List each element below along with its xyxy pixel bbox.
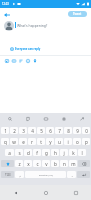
button[interactable]: w (10, 138, 18, 145)
button[interactable]: , (15, 171, 24, 178)
button[interactable]: Add location (31, 57, 38, 64)
staticText: y (49, 139, 52, 145)
button[interactable]: 1 (1, 127, 9, 134)
staticText: c (36, 161, 39, 167)
staticText: 2 (13, 128, 16, 134)
staticText: 0 (85, 128, 88, 134)
button[interactable]: Shift (1, 160, 14, 167)
staticText: What's happening? (17, 23, 48, 28)
button[interactable]: i (64, 138, 72, 145)
button[interactable]: z (15, 160, 23, 167)
button[interactable]: x (24, 160, 32, 167)
button[interactable]: n (60, 160, 68, 167)
button[interactable]: 6 (46, 127, 54, 134)
button[interactable]: ?123 (1, 171, 14, 178)
staticText: h (54, 150, 57, 156)
button[interactable]: 5 (37, 127, 45, 134)
button[interactable]: Add GIF (10, 57, 17, 64)
button[interactable]: Profile picture (4, 21, 14, 31)
button[interactable]: r (28, 138, 36, 145)
button[interactable]: y (46, 138, 54, 145)
button[interactable]: k (69, 149, 77, 156)
button[interactable]: o (73, 138, 81, 145)
staticText: , (19, 172, 21, 178)
staticText: 3 (22, 128, 25, 134)
button[interactable]: 8 (64, 127, 72, 134)
staticText: 12:23 (2, 2, 9, 6)
button[interactable]: u (55, 138, 63, 145)
staticText: s (18, 150, 21, 156)
staticText: Español (US) (39, 173, 53, 176)
button[interactable]: Back (2, 10, 12, 20)
button[interactable]: Tweet (68, 11, 87, 17)
staticText: k (72, 150, 75, 156)
staticText: 4 (31, 128, 34, 134)
staticText: p (85, 139, 88, 145)
staticText: g (45, 150, 48, 156)
button[interactable]: e (19, 138, 27, 145)
button[interactable]: Recent apps (61, 185, 91, 200)
staticText: d (27, 150, 30, 156)
button[interactable]: More options (73, 113, 91, 125)
button[interactable]: q (1, 138, 9, 145)
staticText: x (27, 161, 30, 167)
button[interactable]: m (69, 160, 77, 167)
button[interactable]: h (51, 149, 59, 156)
staticText: 9 (76, 128, 79, 134)
button[interactable]: Settings (55, 113, 73, 125)
button[interactable]: j (60, 149, 68, 156)
staticText: e (22, 139, 25, 145)
button[interactable]: Backspace (78, 160, 90, 167)
staticText: n (63, 161, 66, 167)
button[interactable]: Everyone can reply (10, 47, 41, 51)
staticText: z (18, 161, 21, 167)
staticText: t (40, 139, 42, 145)
button[interactable]: Search (0, 113, 19, 125)
staticText: o (76, 139, 79, 145)
button[interactable]: p (82, 138, 90, 145)
staticText: . (71, 172, 73, 178)
button[interactable]: Español (US) (25, 171, 66, 178)
button[interactable]: Back (0, 185, 31, 200)
button[interactable]: 0 (82, 127, 90, 134)
staticText: b (54, 161, 57, 167)
button[interactable]: v (42, 160, 50, 167)
button[interactable]: g (42, 149, 50, 156)
staticText: r (31, 139, 33, 145)
staticText: i (67, 139, 69, 145)
staticText: 7 (58, 128, 61, 134)
button[interactable]: a (5, 149, 14, 156)
button[interactable]: Add emoji (24, 57, 31, 64)
staticText: q (4, 139, 7, 145)
button[interactable]: Stickers (19, 113, 37, 125)
button[interactable]: s (15, 149, 23, 156)
button[interactable]: f (33, 149, 41, 156)
button[interactable]: 2 (10, 127, 18, 134)
button[interactable]: b (51, 160, 59, 167)
staticText: f (36, 150, 38, 156)
button[interactable]: 4 (28, 127, 36, 134)
staticText: Everyone can reply (15, 47, 41, 51)
staticText: u (58, 139, 61, 145)
button[interactable]: 3 (19, 127, 27, 134)
staticText: 8 (67, 128, 70, 134)
button[interactable]: c (33, 160, 41, 167)
button[interactable]: Add poll (17, 57, 24, 64)
staticText: l (81, 150, 83, 156)
button[interactable]: Enter (77, 171, 90, 178)
button[interactable]: d (24, 149, 32, 156)
button[interactable]: . (67, 171, 76, 178)
staticText: Tweet (73, 12, 82, 16)
button[interactable]: Home (31, 185, 61, 200)
button[interactable]: Add photo (3, 57, 10, 64)
button[interactable]: l (78, 149, 86, 156)
button[interactable]: 7 (55, 127, 63, 134)
staticText: w (12, 139, 16, 145)
button[interactable]: 9 (73, 127, 81, 134)
button[interactable]: t (37, 138, 45, 145)
staticText: ?123 (5, 173, 11, 177)
staticText: v (45, 161, 48, 167)
button[interactable]: GIF (37, 113, 55, 125)
staticText: 1 (4, 128, 7, 134)
staticText: m (71, 161, 76, 167)
